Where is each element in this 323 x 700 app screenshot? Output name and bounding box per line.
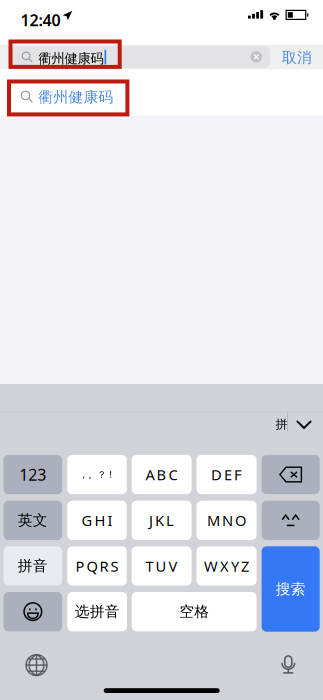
button[interactable]: 英文	[3, 501, 62, 540]
button[interactable]: D E F	[196, 455, 257, 494]
button[interactable]: 空格	[132, 592, 257, 631]
button[interactable]: ，。？！	[67, 455, 127, 494]
staticText: P Q R S	[75, 556, 118, 576]
button[interactable]: Kaomoji	[262, 501, 320, 540]
button[interactable]: 123	[3, 455, 62, 494]
staticText: W X Y Z	[204, 556, 249, 576]
staticText: 12:40	[20, 9, 60, 31]
button[interactable]: A B C	[132, 455, 192, 494]
staticText: D E F	[211, 465, 242, 484]
button[interactable]: M N O	[196, 501, 257, 540]
button[interactable]: P Q R S	[67, 546, 127, 586]
button[interactable]: 取消	[282, 50, 312, 65]
staticText: 选拼音	[75, 603, 120, 621]
staticText: 衢州健康码	[38, 50, 103, 67]
button[interactable]: Dictation	[279, 654, 297, 674]
staticText: G H I	[81, 511, 112, 530]
button[interactable]: Delete	[262, 455, 320, 494]
button[interactable]: 选拼音	[67, 592, 127, 631]
staticText: 英文	[18, 511, 48, 529]
staticText: M N O	[207, 511, 246, 530]
button[interactable]: Next keyboard	[25, 654, 48, 676]
staticText: A B C	[146, 465, 178, 484]
staticText: 取消	[282, 48, 312, 66]
staticText: 空格	[179, 603, 209, 621]
button[interactable]: W X Y Z	[196, 546, 257, 586]
staticText: ，。？！	[79, 469, 115, 480]
button[interactable]: Emoji	[3, 592, 62, 631]
staticText: T U V	[146, 556, 178, 576]
staticText: 搜索	[276, 580, 306, 598]
staticText: 拼音	[18, 557, 48, 575]
button[interactable]: 衢州健康码	[0, 70, 323, 115]
staticText: 拼	[275, 417, 287, 432]
staticText: 衢州健康码	[38, 88, 113, 106]
staticText: J K L	[149, 511, 174, 530]
staticText: 123	[19, 464, 46, 485]
button[interactable]: 拼音	[3, 546, 62, 586]
button[interactable]: T U V	[132, 546, 192, 586]
button[interactable]: Clear text	[250, 51, 262, 63]
button[interactable]: Hide keyboard	[296, 420, 312, 429]
button[interactable]: G H I	[67, 501, 127, 540]
button[interactable]: 搜索	[262, 546, 320, 632]
button[interactable]: J K L	[132, 501, 192, 540]
